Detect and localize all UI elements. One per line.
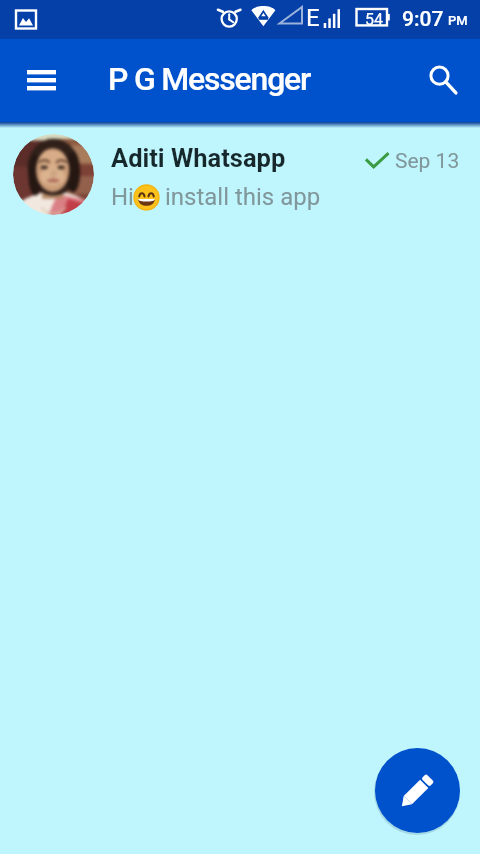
button[interactable]: Aditi Whatsapp [0, 128, 480, 222]
button[interactable]: Search [419, 57, 467, 105]
staticText: Aditi Whatsapp [111, 143, 286, 173]
staticText: PM [448, 13, 468, 28]
staticText: 9:07 [402, 7, 444, 32]
staticText: install this app [159, 183, 321, 211]
staticText: 54 [365, 10, 383, 29]
button[interactable]: Open navigation drawer [15, 54, 68, 107]
staticText: P G Messenger [108, 60, 311, 98]
button[interactable]: Compose new message [375, 748, 460, 833]
staticText: Sep 13 [395, 149, 460, 174]
staticText: E [306, 4, 320, 32]
staticText: Hi [111, 183, 134, 211]
